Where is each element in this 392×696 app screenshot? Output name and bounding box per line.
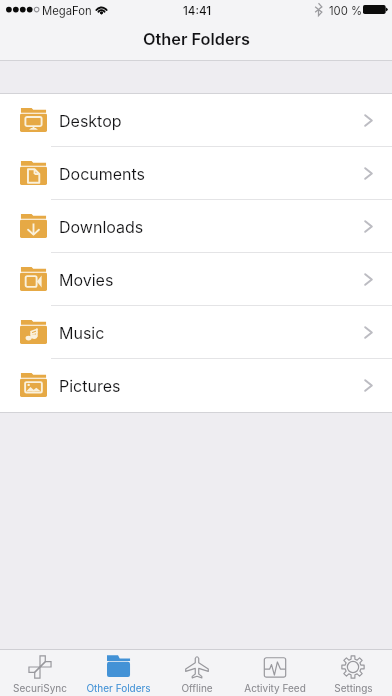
staticText: MegaFon	[42, 4, 92, 18]
staticText: Movies	[59, 270, 114, 289]
button[interactable]: Offline	[158, 650, 236, 696]
button[interactable]: Settings	[314, 650, 392, 696]
button[interactable]: Pictures	[0, 359, 392, 412]
staticText: 14:41	[183, 4, 212, 18]
staticText: Pictures	[59, 376, 121, 395]
button[interactable]: Documents	[0, 147, 392, 200]
staticText: Other Folders	[143, 29, 250, 49]
staticText: Other Folders	[86, 682, 151, 694]
staticText: Offline	[181, 682, 213, 694]
staticText: Documents	[59, 164, 146, 183]
button[interactable]: Downloads	[0, 200, 392, 253]
staticText: Settings	[334, 682, 373, 694]
staticText: Desktop	[59, 111, 122, 130]
staticText: Downloads	[59, 217, 144, 236]
button[interactable]: Music	[0, 306, 392, 359]
staticText: Music	[59, 323, 105, 342]
button[interactable]: Other Folders	[79, 650, 158, 696]
staticText: SecuriSync	[13, 682, 67, 694]
staticText: 100 %	[329, 4, 363, 18]
button[interactable]: Movies	[0, 253, 392, 306]
button[interactable]: Activity Feed	[236, 650, 314, 696]
staticText: Activity Feed	[244, 682, 306, 694]
button[interactable]: SecuriSync	[0, 650, 79, 696]
button[interactable]: Desktop	[0, 94, 392, 147]
